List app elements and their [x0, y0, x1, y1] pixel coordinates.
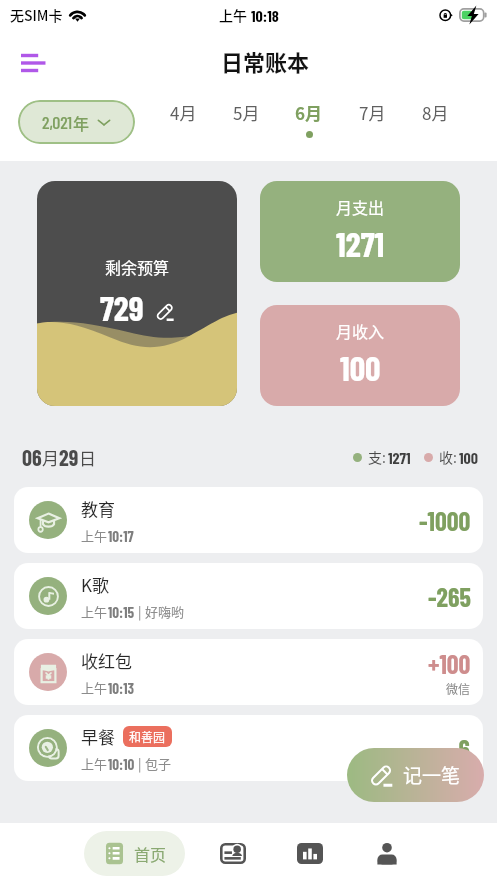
staticText: 月	[42, 445, 59, 470]
staticText: 上午	[219, 5, 247, 25]
button[interactable]: 5月	[222, 100, 270, 144]
button[interactable]: 月收入	[260, 305, 460, 406]
staticText: 首页	[134, 842, 167, 865]
staticText: K歌	[81, 572, 109, 597]
button[interactable]: 8月	[411, 100, 459, 144]
staticText: |	[135, 602, 145, 621]
staticText: 100	[340, 347, 381, 388]
staticText: -6	[450, 733, 471, 764]
staticText: 收红包	[81, 648, 132, 673]
staticText: 教育	[81, 496, 115, 521]
staticText: 包子	[145, 754, 172, 773]
staticText: 1271	[388, 448, 411, 467]
staticText: 无SIM卡	[10, 5, 63, 25]
staticText: 支:	[368, 447, 386, 467]
staticText: 10:13	[108, 679, 134, 697]
button[interactable]: 收红包	[14, 639, 483, 705]
button[interactable]: Profile	[364, 830, 410, 876]
button[interactable]: 早餐	[14, 715, 483, 781]
staticText: 8月	[422, 100, 449, 125]
staticText: 2,021	[42, 111, 73, 133]
staticText: 月支出	[336, 195, 385, 218]
staticText: 7月	[359, 100, 386, 125]
staticText: -265	[428, 581, 471, 612]
staticText: 上午	[81, 754, 108, 773]
button[interactable]: Statistics	[287, 830, 333, 876]
staticText: 10:10	[108, 755, 135, 773]
staticText: 100	[459, 448, 479, 467]
button[interactable]: 月支出	[260, 181, 460, 282]
staticText: 06	[22, 444, 42, 470]
staticText: 29	[59, 444, 79, 470]
staticText: -1000	[419, 505, 471, 536]
staticText: 上午	[81, 602, 108, 621]
staticText: 729	[100, 287, 144, 328]
button[interactable]: Bills	[210, 830, 256, 876]
staticText: 1271	[336, 223, 385, 264]
staticText: 10:17	[108, 527, 134, 545]
staticText: 记一笔	[403, 761, 461, 789]
staticText: 剩余预算	[105, 255, 170, 278]
staticText: 10:15	[108, 603, 135, 621]
button[interactable]: 记一笔	[347, 748, 484, 802]
staticText: 好嗨哟	[145, 602, 185, 621]
staticText: +100	[428, 648, 471, 679]
staticText: 月收入	[336, 319, 385, 342]
staticText: 日常账本	[221, 45, 310, 77]
staticText: 微信	[446, 680, 471, 697]
staticText: 和善园	[129, 728, 166, 745]
staticText: 10:18	[251, 6, 279, 25]
staticText: |	[135, 754, 145, 773]
button[interactable]: 4月	[159, 100, 207, 144]
staticText: 上午	[81, 678, 108, 697]
staticText: 年	[73, 111, 90, 134]
staticText: 4月	[170, 100, 197, 125]
staticText: 早餐	[81, 724, 115, 749]
button[interactable]: 首页	[84, 831, 185, 876]
staticText: 6月	[295, 100, 323, 125]
button[interactable]: 教育	[14, 487, 483, 553]
button[interactable]: 7月	[348, 100, 396, 144]
staticText: 日	[79, 445, 96, 470]
staticText: 5月	[233, 100, 260, 125]
button[interactable]: Menu	[12, 42, 54, 84]
button[interactable]: K歌	[14, 563, 483, 629]
button[interactable]: 6月	[285, 100, 333, 144]
staticText: 上午	[81, 526, 108, 545]
button[interactable]: 剩余预算	[37, 181, 237, 406]
button[interactable]: 2,021	[18, 100, 135, 144]
staticText: 收:	[439, 447, 457, 467]
